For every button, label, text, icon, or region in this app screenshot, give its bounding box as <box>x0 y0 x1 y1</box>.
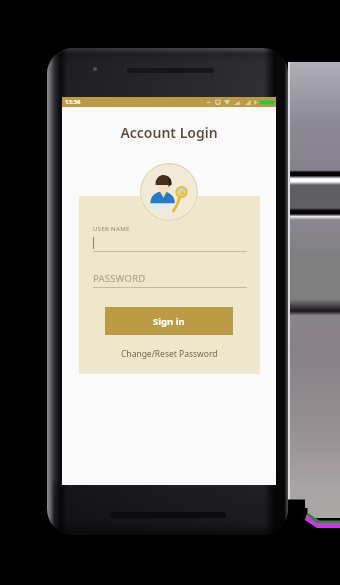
staticText: USER NAME <box>93 225 130 233</box>
button[interactable]: Change/Reset Password <box>79 346 260 362</box>
staticText: Sign in <box>153 315 185 328</box>
staticText: PASSWORD <box>93 272 146 285</box>
staticText: 13:36 <box>65 98 81 106</box>
staticText: Change/Reset Password <box>121 348 218 360</box>
button[interactable]: Sign in <box>105 307 233 335</box>
staticText: Account Login <box>62 123 276 142</box>
